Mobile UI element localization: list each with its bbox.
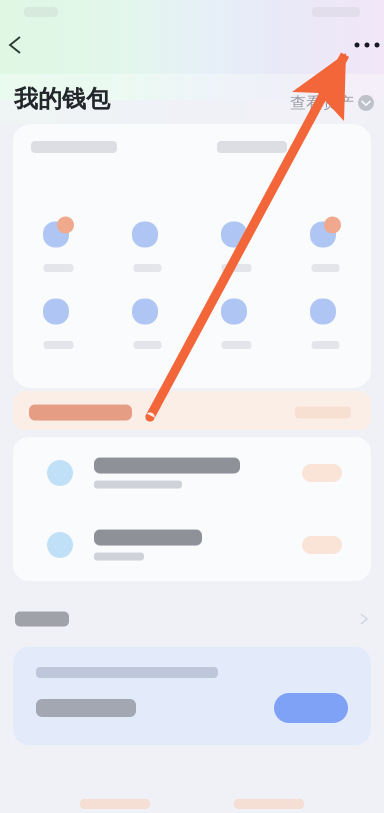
button[interactable]	[13, 437, 371, 509]
button[interactable]: Open	[274, 693, 348, 723]
staticText: 我的钱包	[14, 84, 110, 114]
button[interactable]: 查看资产	[290, 93, 374, 114]
button[interactable]: Wallet feature	[281, 282, 370, 358]
button[interactable]: Back	[1, 30, 29, 60]
button[interactable]: Wallet feature	[281, 205, 370, 281]
button[interactable]: Wallet feature	[103, 205, 192, 281]
button[interactable]	[0, 595, 384, 643]
button[interactable]: Wallet feature	[14, 282, 103, 358]
button[interactable]	[13, 509, 371, 581]
button[interactable]: Wallet feature	[103, 282, 192, 358]
button[interactable]: Wallet feature	[192, 205, 281, 281]
button[interactable]: Wallet feature	[192, 282, 281, 358]
button[interactable]: More options	[351, 30, 383, 60]
staticText: 查看资产	[290, 93, 354, 113]
button[interactable]: Wallet feature	[14, 205, 103, 281]
button[interactable]	[13, 391, 371, 430]
